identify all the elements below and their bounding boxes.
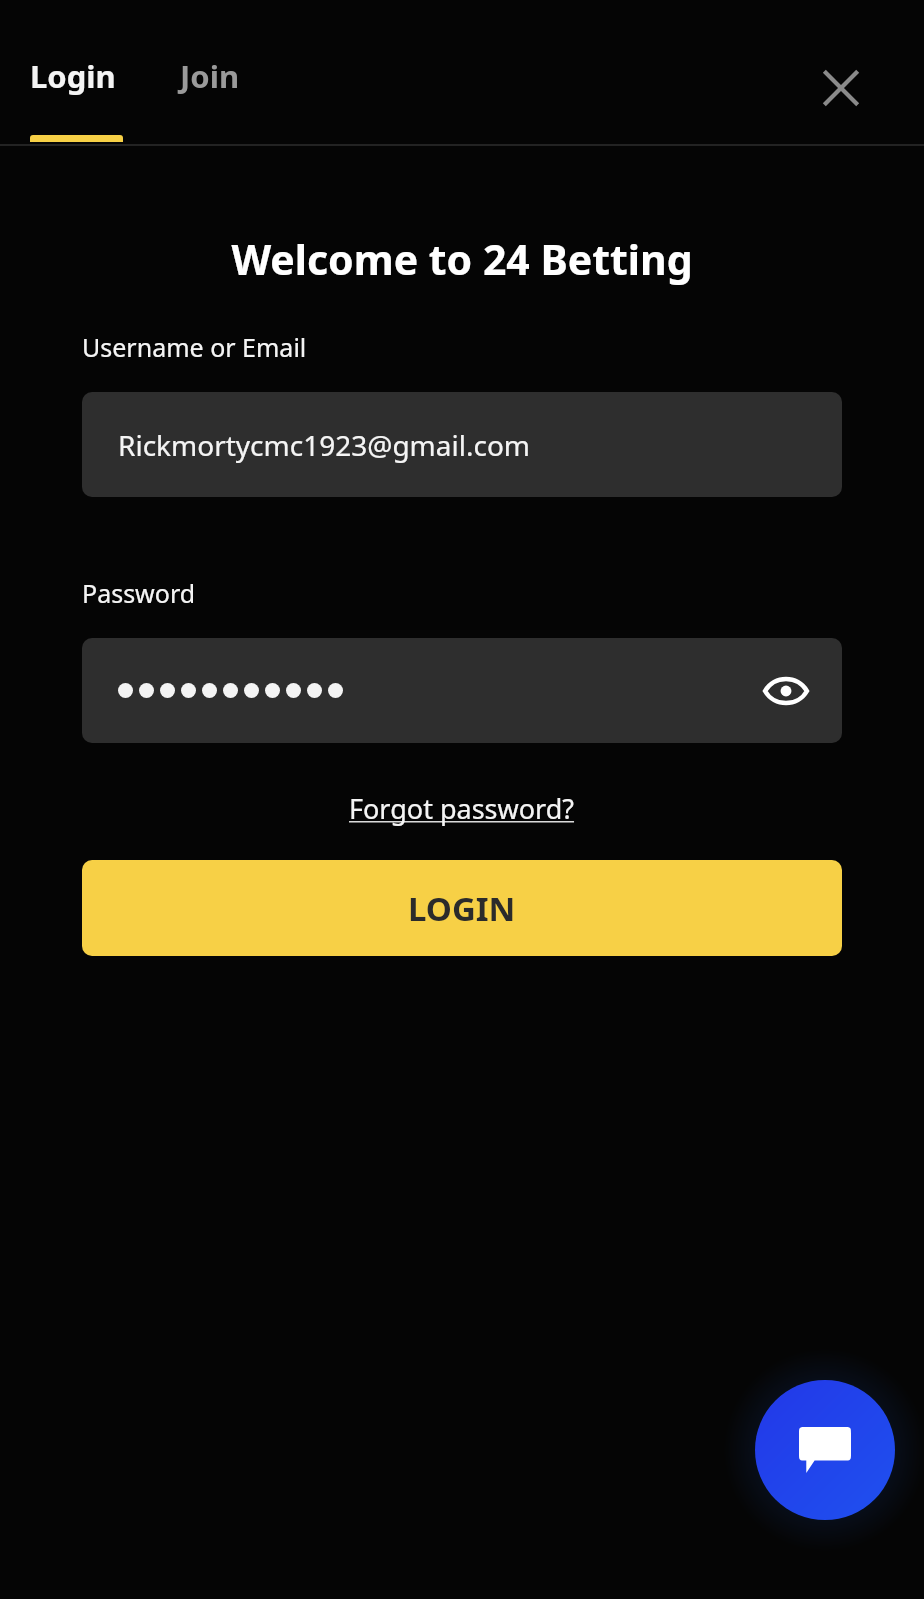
staticText: Welcome to 24 Betting bbox=[0, 231, 924, 287]
button[interactable]: Chat support bbox=[755, 1380, 895, 1520]
staticText: Username or Email bbox=[82, 330, 307, 364]
button[interactable]: Show password bbox=[82, 638, 842, 743]
staticText: Forgot password? bbox=[349, 790, 575, 827]
button[interactable]: LOGIN bbox=[82, 860, 842, 956]
button[interactable]: Rickmortycmc1923@gmail.com bbox=[82, 392, 842, 497]
staticText: Login bbox=[30, 55, 116, 97]
staticText: LOGIN bbox=[408, 886, 516, 931]
button[interactable]: Forgot password? bbox=[343, 786, 581, 831]
staticText: Rickmortycmc1923@gmail.com bbox=[118, 426, 531, 464]
staticText: Password bbox=[82, 576, 196, 610]
staticText: Join bbox=[180, 55, 240, 97]
button[interactable]: Show password bbox=[758, 663, 814, 719]
button[interactable]: Login bbox=[30, 0, 123, 142]
button[interactable]: Close bbox=[798, 45, 884, 131]
button[interactable]: Join bbox=[180, 0, 240, 97]
